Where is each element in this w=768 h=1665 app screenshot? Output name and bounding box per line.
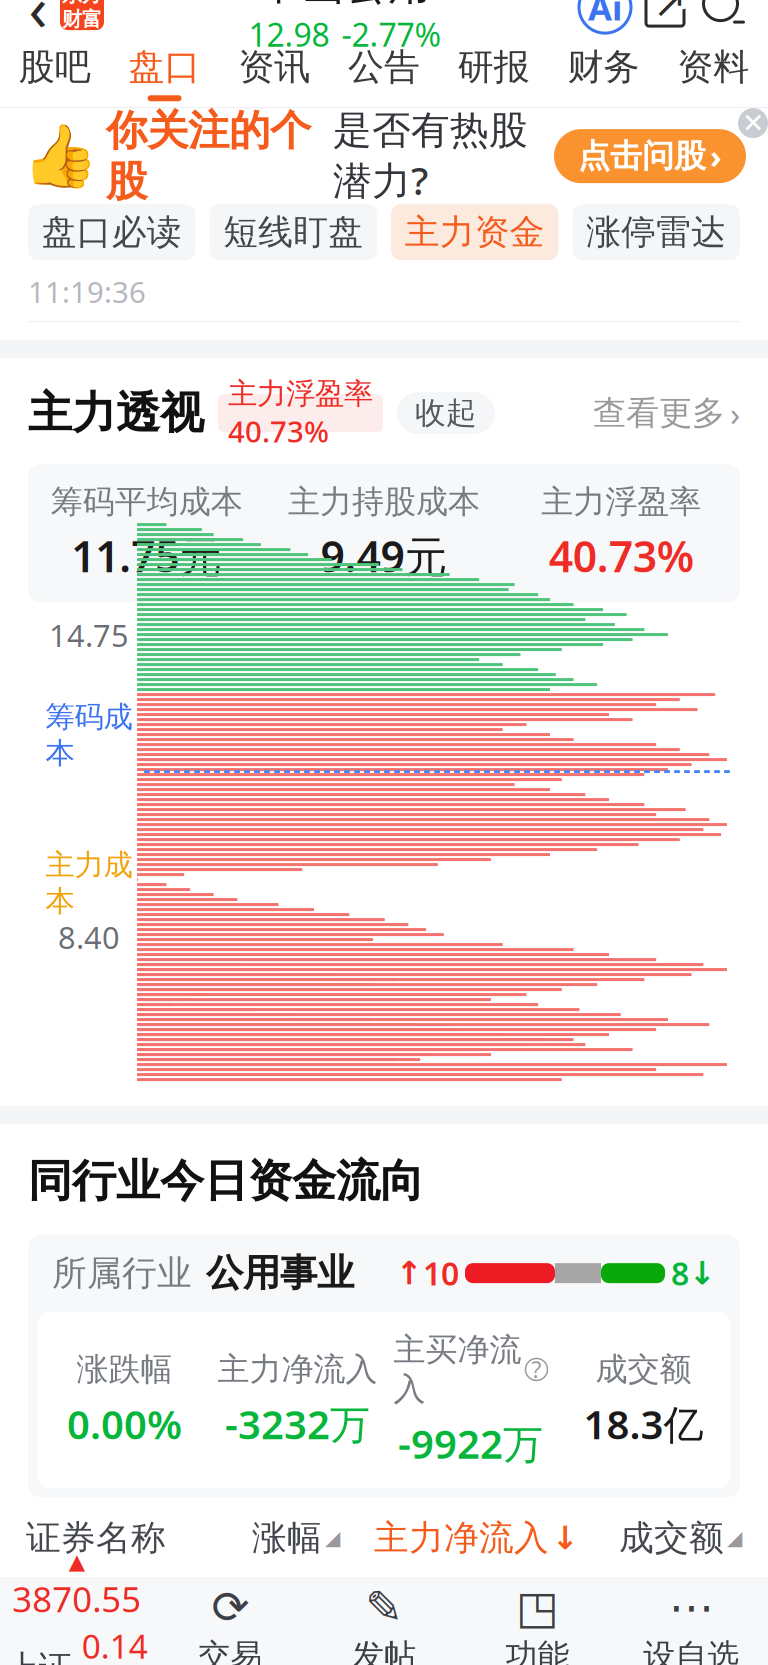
button[interactable]: 主力净流入 bbox=[374, 1517, 579, 1559]
button[interactable]: 研报 bbox=[439, 39, 549, 107]
staticText: 10 bbox=[423, 1252, 459, 1294]
button[interactable]: 盘口 bbox=[110, 39, 219, 107]
button[interactable]: 搜索 bbox=[696, 0, 752, 36]
staticText: 设自选 bbox=[643, 1636, 739, 1665]
staticText: ▲ bbox=[69, 1549, 85, 1574]
button[interactable]: 短线盯盘 bbox=[209, 204, 377, 260]
staticText: 你关注的个股 bbox=[106, 105, 311, 207]
staticText: 14.75 bbox=[49, 615, 129, 655]
staticText: 成交额 bbox=[595, 1350, 691, 1389]
staticText: 公告 bbox=[348, 45, 420, 89]
staticText: 40.73% bbox=[549, 527, 694, 584]
button[interactable]: ◳ bbox=[461, 1579, 614, 1665]
button[interactable]: 主力资金 bbox=[391, 204, 558, 260]
staticText: 盘口必读 bbox=[42, 211, 182, 253]
staticText: 18.3亿 bbox=[583, 1397, 703, 1450]
button[interactable]: 涨幅 bbox=[252, 1517, 340, 1559]
button[interactable]: AI 助手 bbox=[576, 0, 634, 36]
staticText: ◳ bbox=[516, 1581, 559, 1633]
button[interactable]: ⋯ bbox=[614, 1579, 768, 1665]
button[interactable]: 查看更多 bbox=[593, 391, 740, 435]
staticText: 主力净流入 bbox=[217, 1350, 377, 1389]
staticText: 主力透视 bbox=[28, 386, 204, 440]
staticText: 9.49元 bbox=[320, 527, 447, 584]
staticText: 3870.55 bbox=[12, 1576, 141, 1622]
staticText: 筹码成本 bbox=[45, 699, 132, 771]
staticText: 主力资金 bbox=[405, 211, 545, 253]
staticText: 盘口 bbox=[129, 45, 201, 89]
staticText: 主力浮盈率40.73% bbox=[228, 376, 373, 451]
staticText: › bbox=[730, 391, 740, 435]
staticText: 筹码平均成本 bbox=[51, 482, 243, 521]
staticText: 收起 bbox=[415, 394, 477, 432]
button[interactable]: 东方财富 bbox=[60, 0, 104, 30]
staticText: 12.98 bbox=[248, 13, 329, 56]
button[interactable]: 公告 bbox=[329, 39, 439, 107]
staticText: 是否有热股潜力? bbox=[333, 107, 528, 205]
staticText: 11:19:36 bbox=[28, 272, 146, 311]
button[interactable]: 关闭 bbox=[738, 108, 768, 138]
button[interactable]: 股吧 bbox=[0, 39, 110, 107]
staticText: 查看更多 bbox=[593, 393, 725, 433]
staticText: 0.14% bbox=[82, 1624, 148, 1665]
staticText: 8.40 bbox=[58, 917, 120, 957]
staticText: ◢ bbox=[325, 1526, 340, 1549]
button[interactable]: 资料 bbox=[658, 39, 768, 107]
staticText: 成交额 bbox=[619, 1517, 724, 1559]
staticText: 主力浮盈率 bbox=[541, 482, 701, 521]
staticText: -9922万 bbox=[398, 1417, 543, 1470]
button[interactable]: 返回 bbox=[16, 0, 60, 35]
staticText: 公用事业 bbox=[206, 1250, 354, 1296]
staticText: 主买净流入 bbox=[393, 1330, 521, 1409]
staticText: 涨停雷达 bbox=[586, 211, 726, 253]
staticText: 财富 bbox=[62, 7, 102, 32]
staticText: ✕ bbox=[742, 108, 764, 138]
staticText: ↗ bbox=[653, 0, 687, 26]
staticText: 涨跌幅 bbox=[76, 1350, 172, 1389]
staticText: 股吧 bbox=[19, 45, 91, 89]
staticText: 财务 bbox=[567, 45, 639, 89]
staticText: 👍 bbox=[22, 121, 98, 191]
button[interactable]: ⟳ bbox=[154, 1579, 307, 1665]
button[interactable]: ✎ bbox=[307, 1579, 461, 1665]
staticText: ↓ bbox=[689, 1255, 716, 1291]
button[interactable]: ▲ bbox=[0, 1579, 154, 1665]
staticText: -2.77% bbox=[341, 13, 441, 56]
button[interactable]: 成交额 bbox=[619, 1517, 742, 1559]
button[interactable]: 分享 bbox=[634, 0, 696, 36]
staticText: ⋯ bbox=[669, 1581, 714, 1633]
staticText: 同行业今日资金流向 bbox=[28, 1154, 424, 1208]
button[interactable]: 点击问股 bbox=[554, 129, 746, 183]
staticText: ⟳ bbox=[211, 1581, 249, 1633]
staticText: 发帖 bbox=[352, 1636, 416, 1665]
button[interactable]: 财务 bbox=[549, 39, 658, 107]
button[interactable]: 资讯 bbox=[219, 39, 329, 107]
button[interactable]: 涨停雷达 bbox=[572, 204, 740, 260]
staticText: ↓ bbox=[552, 1520, 579, 1556]
staticText: 0.00% bbox=[67, 1397, 182, 1450]
staticText: 8 bbox=[671, 1252, 689, 1294]
staticText: 证券名称 bbox=[26, 1517, 166, 1559]
staticText: -3232万 bbox=[225, 1397, 370, 1450]
staticText: 主力持股成本 bbox=[288, 482, 480, 521]
staticText: 资讯 bbox=[238, 45, 310, 89]
staticText: 涨幅 bbox=[252, 1517, 322, 1559]
staticText: 研报 bbox=[458, 45, 530, 89]
staticText: 所属行业 bbox=[52, 1252, 192, 1294]
staticText: 短线盯盘 bbox=[223, 211, 363, 253]
staticText: 中山公用 bbox=[259, 0, 431, 11]
staticText: 主力净流入 bbox=[374, 1517, 549, 1559]
staticText: 点击问股 bbox=[578, 136, 706, 176]
staticText: ‹ bbox=[28, 0, 47, 48]
staticText: ↑ bbox=[396, 1255, 423, 1291]
staticText: 功能 bbox=[506, 1636, 570, 1665]
staticText: › bbox=[710, 135, 722, 177]
staticText: Ai bbox=[588, 0, 622, 30]
staticText: 东方 bbox=[62, 0, 102, 7]
staticText: 交易 bbox=[198, 1636, 262, 1665]
staticText: ? bbox=[531, 1354, 541, 1384]
staticText: 主力成本 bbox=[45, 847, 132, 919]
button[interactable]: 盘口必读 bbox=[28, 204, 195, 260]
button[interactable]: 收起 bbox=[397, 392, 495, 434]
staticText: 11.75元 bbox=[71, 527, 222, 584]
